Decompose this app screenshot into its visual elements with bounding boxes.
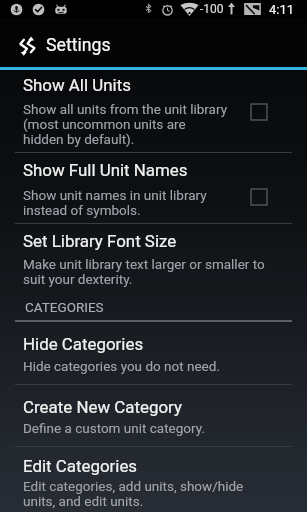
- staticText: Settings: [46, 35, 111, 56]
- staticText: Define a custom unit category.: [23, 420, 205, 436]
- staticText: Make unit library text larger or smaller…: [23, 256, 265, 287]
- button[interactable]: Hide Categories: [0, 322, 307, 384]
- button[interactable]: Toggle Show Full Unit Names: [251, 189, 267, 205]
- staticText: Create New Category: [23, 397, 182, 417]
- button[interactable]: Edit Categories: [0, 447, 307, 511]
- button[interactable]: Show Full Unit Names: [0, 153, 307, 223]
- button[interactable]: Show All Units: [0, 70, 307, 152]
- staticText: Hide categories you do not need.: [23, 358, 220, 374]
- button[interactable]: Toggle Show All Units: [251, 104, 267, 120]
- staticText: Show Full Unit Names: [23, 160, 188, 180]
- button[interactable]: Create New Category: [0, 385, 307, 446]
- staticText: Show All Units: [23, 75, 131, 95]
- other: ConvertPad: [19, 36, 36, 56]
- staticText: Show all units from the unit library (mo…: [23, 101, 228, 147]
- staticText: CATEGORIES: [25, 299, 104, 315]
- staticText: Edit Categories: [23, 456, 138, 476]
- button[interactable]: ConvertPad: [0, 18, 307, 67]
- staticText: Show unit names in unit library instead …: [23, 187, 207, 218]
- staticText: Set Library Font Size: [23, 231, 177, 251]
- staticText: 4:11: [269, 2, 295, 17]
- staticText: Edit categories, add units, show/hide un…: [23, 478, 244, 509]
- staticText: Hide Categories: [23, 334, 144, 354]
- staticText: -100: [200, 2, 224, 16]
- button[interactable]: Set Library Font Size: [0, 224, 307, 299]
